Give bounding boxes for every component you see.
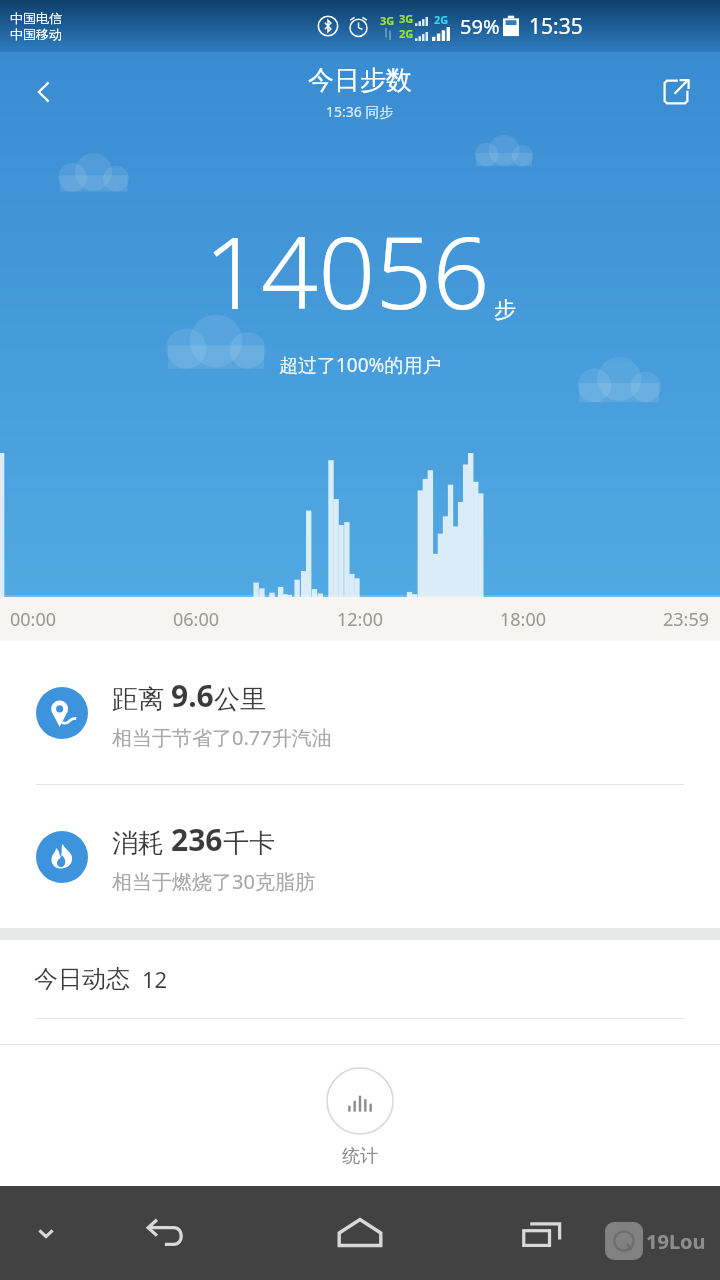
staticText: 中国移动 <box>10 26 62 42</box>
staticText: 3G <box>380 13 395 28</box>
staticText: 236 <box>171 819 223 860</box>
staticText: 59% <box>460 13 500 40</box>
staticText: 15:36 同步 <box>326 102 394 121</box>
button[interactable]: 统计 <box>0 1045 720 1178</box>
button[interactable]: Share <box>650 66 702 118</box>
button[interactable]: 消耗 <box>0 785 720 928</box>
staticText: 2G <box>434 12 449 27</box>
button[interactable]: 今日动态 <box>0 940 720 1018</box>
staticText: 统计 <box>342 1145 378 1168</box>
button[interactable]: Hide keyboard <box>18 1205 74 1261</box>
staticText: 相当于燃烧了30克脂肪 <box>112 868 315 895</box>
button[interactable]: 距离 <box>0 641 720 784</box>
staticText: 18:00 <box>500 607 547 632</box>
staticText: 23:59 <box>663 607 710 632</box>
staticText: 千卡 <box>223 827 275 860</box>
staticText: 00:00 <box>10 607 57 632</box>
staticText: 15:35 <box>529 12 583 41</box>
staticText: 步 <box>494 296 516 324</box>
staticText: 今日动态 <box>34 964 130 994</box>
staticText: 14056 <box>204 202 490 338</box>
staticText: 9.6 <box>171 675 214 716</box>
staticText: 06:00 <box>173 607 220 632</box>
button[interactable]: Recents <box>508 1197 580 1269</box>
staticText: 3G <box>399 11 414 26</box>
staticText: 今日步数 <box>308 64 412 97</box>
staticText: 超过了100%的用户 <box>279 352 442 378</box>
button[interactable]: Back <box>128 1197 200 1269</box>
staticText: 12 <box>142 964 168 994</box>
staticText: 中国电信 <box>10 10 62 26</box>
button[interactable]: Home <box>320 1193 400 1273</box>
staticText: 相当于节省了0.77升汽油 <box>112 724 332 751</box>
staticText: 距离 <box>112 680 171 716</box>
staticText: 2G <box>399 26 414 41</box>
staticText: 12:00 <box>337 607 384 632</box>
staticText: 公里 <box>214 683 266 716</box>
staticText: 消耗 <box>112 824 171 860</box>
button[interactable]: Back <box>18 66 70 118</box>
staticText: 19Lou <box>646 1228 706 1255</box>
